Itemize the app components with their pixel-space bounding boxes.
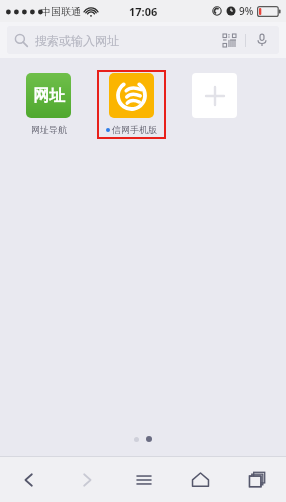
staticText: 网址导航 <box>31 124 67 135</box>
button[interactable] <box>180 70 249 139</box>
staticText: 中国联通 <box>41 5 81 18</box>
button[interactable]: 搜索或输入网址 <box>7 26 279 54</box>
button[interactable]: Home <box>172 457 229 502</box>
staticText: 信网手机版 <box>112 124 157 135</box>
button[interactable]: Menu <box>115 457 172 502</box>
button[interactable]: Back <box>0 457 58 502</box>
staticText: 网址 <box>33 86 65 106</box>
staticText: 9% <box>239 4 254 18</box>
button[interactable]: 网址 <box>14 70 83 139</box>
staticText: 搜索或输入网址 <box>35 33 119 48</box>
button[interactable]: Scan QR code <box>219 30 239 50</box>
button[interactable]: Voice search <box>252 30 272 50</box>
button[interactable]: 信网手机版 <box>97 70 166 139</box>
staticText: 17:06 <box>129 4 158 19</box>
button[interactable]: Tabs <box>229 457 286 502</box>
button[interactable]: Forward <box>58 457 115 502</box>
